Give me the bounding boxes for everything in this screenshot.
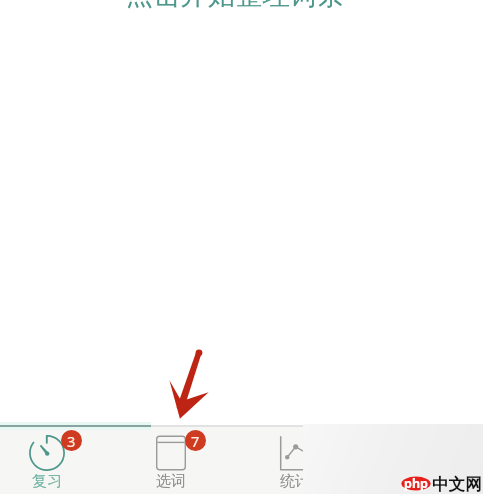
button[interactable]: 统计	[264, 427, 303, 493]
staticText: 7	[191, 431, 200, 451]
staticText: 统计	[280, 472, 303, 491]
other: php 中文网	[399, 472, 483, 494]
button[interactable]: 复习	[16, 427, 78, 493]
staticText: 点击开始整理词条	[126, 0, 345, 12]
staticText: 中文网	[432, 474, 482, 494]
staticText: 复习	[32, 472, 62, 491]
staticText: 3	[67, 431, 76, 451]
button[interactable]: 选词	[140, 427, 202, 493]
staticText: 选词	[156, 472, 186, 491]
staticText: php	[404, 475, 428, 492]
